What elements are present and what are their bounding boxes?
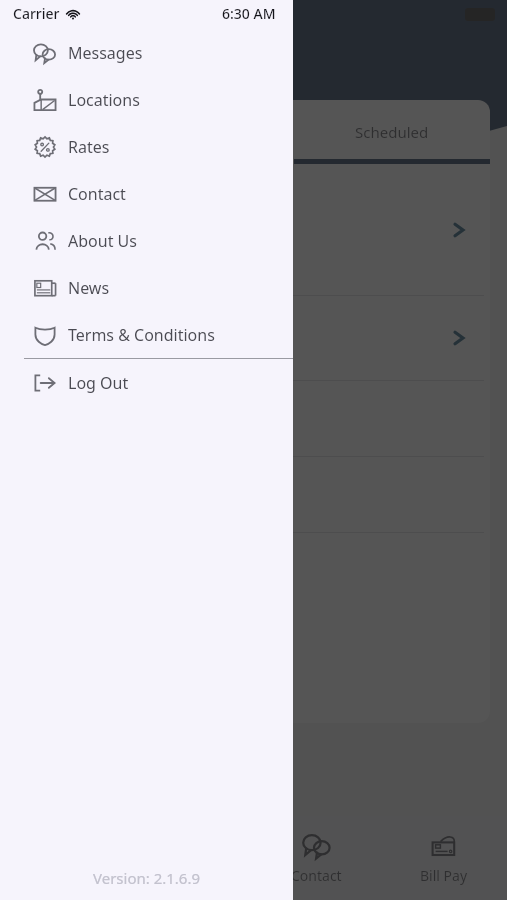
button[interactable]: News (0, 264, 293, 311)
staticText: Account Transfer (39, 220, 159, 240)
button[interactable]: Pending (98, 100, 294, 164)
button[interactable]: Contact (253, 816, 380, 900)
button[interactable]: Accounts (126, 816, 253, 900)
staticText: Contact (68, 183, 126, 205)
staticText: 6:30 AM (222, 4, 276, 23)
staticText: Messages (68, 42, 143, 64)
button[interactable]: Locations (0, 76, 293, 123)
staticText: Loan Payment (39, 328, 140, 348)
staticText: Bill Pay (420, 866, 468, 885)
button[interactable]: Bill Pay (380, 816, 507, 900)
button[interactable]: Loan Payment (17, 296, 490, 380)
button[interactable]: Home (0, 816, 126, 900)
button[interactable]: Scheduled (294, 100, 490, 164)
button[interactable]: About Us (0, 217, 293, 264)
button[interactable]: Rates (0, 123, 293, 170)
staticText: Version: 2.1.6.9 (0, 868, 293, 888)
button[interactable]: Statements (17, 457, 490, 532)
staticText: About Us (68, 230, 137, 252)
button[interactable]: Messages (0, 29, 293, 76)
button[interactable]: Terms & Conditions (0, 311, 293, 358)
staticText: News (68, 277, 110, 299)
button[interactable]: Log Out (0, 359, 293, 406)
button[interactable]: Contact (0, 170, 293, 217)
staticText: Log Out (68, 372, 129, 394)
staticText: Accounts (160, 866, 220, 885)
staticText: Locations (68, 89, 140, 111)
button[interactable]: Recent Activity (17, 381, 490, 456)
staticText: Terms & Conditions (68, 324, 215, 346)
staticText: Carrier (13, 4, 60, 23)
staticText: Contact (291, 866, 342, 885)
button[interactable]: Account Transfer (17, 164, 490, 295)
staticText: Rates (68, 136, 110, 158)
staticText: Scheduled (355, 122, 429, 142)
